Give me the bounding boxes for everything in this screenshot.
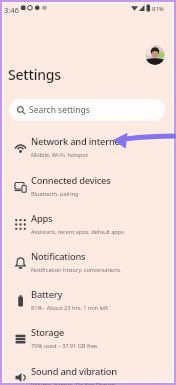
button[interactable]: Connected devices: [4, 167, 172, 205]
staticText: 3:46: [4, 5, 19, 15]
staticText: Sound and vibration: [31, 365, 117, 378]
staticText: Mobile, Wi-Fi, hotspot: [31, 151, 88, 159]
staticText: Apps: [31, 212, 53, 225]
button[interactable]: Network and internet: [4, 128, 172, 166]
button[interactable]: Search settings: [9, 99, 165, 121]
button[interactable]: Battery: [4, 281, 172, 319]
button[interactable]: Storage: [4, 319, 172, 357]
staticText: Network and internet: [31, 135, 124, 148]
staticText: Storage: [31, 326, 65, 339]
staticText: 70% used – 37.91 GB free: [31, 342, 98, 350]
staticText: Search settings: [29, 104, 90, 116]
button[interactable]: Apps: [4, 205, 172, 243]
button[interactable]: Sound and vibration: [4, 358, 172, 385]
staticText: Notifications: [31, 250, 86, 263]
staticText: Settings: [8, 65, 61, 84]
button[interactable]: [145, 45, 165, 65]
staticText: Bluetooth, pairing: [31, 190, 79, 198]
staticText: Battery: [31, 288, 63, 301]
staticText: Volume, haptics, Do Not Disturb: [31, 381, 116, 385]
staticText: 81%: [152, 5, 164, 13]
staticText: Connected devices: [31, 174, 111, 187]
staticText: 81% - About 23 hrs, 1 min left: [31, 304, 108, 312]
button[interactable]: Notifications: [4, 243, 172, 281]
staticText: Assistant, recent apps, default apps: [31, 228, 124, 236]
staticText: Notification history, conversations: [31, 266, 121, 274]
